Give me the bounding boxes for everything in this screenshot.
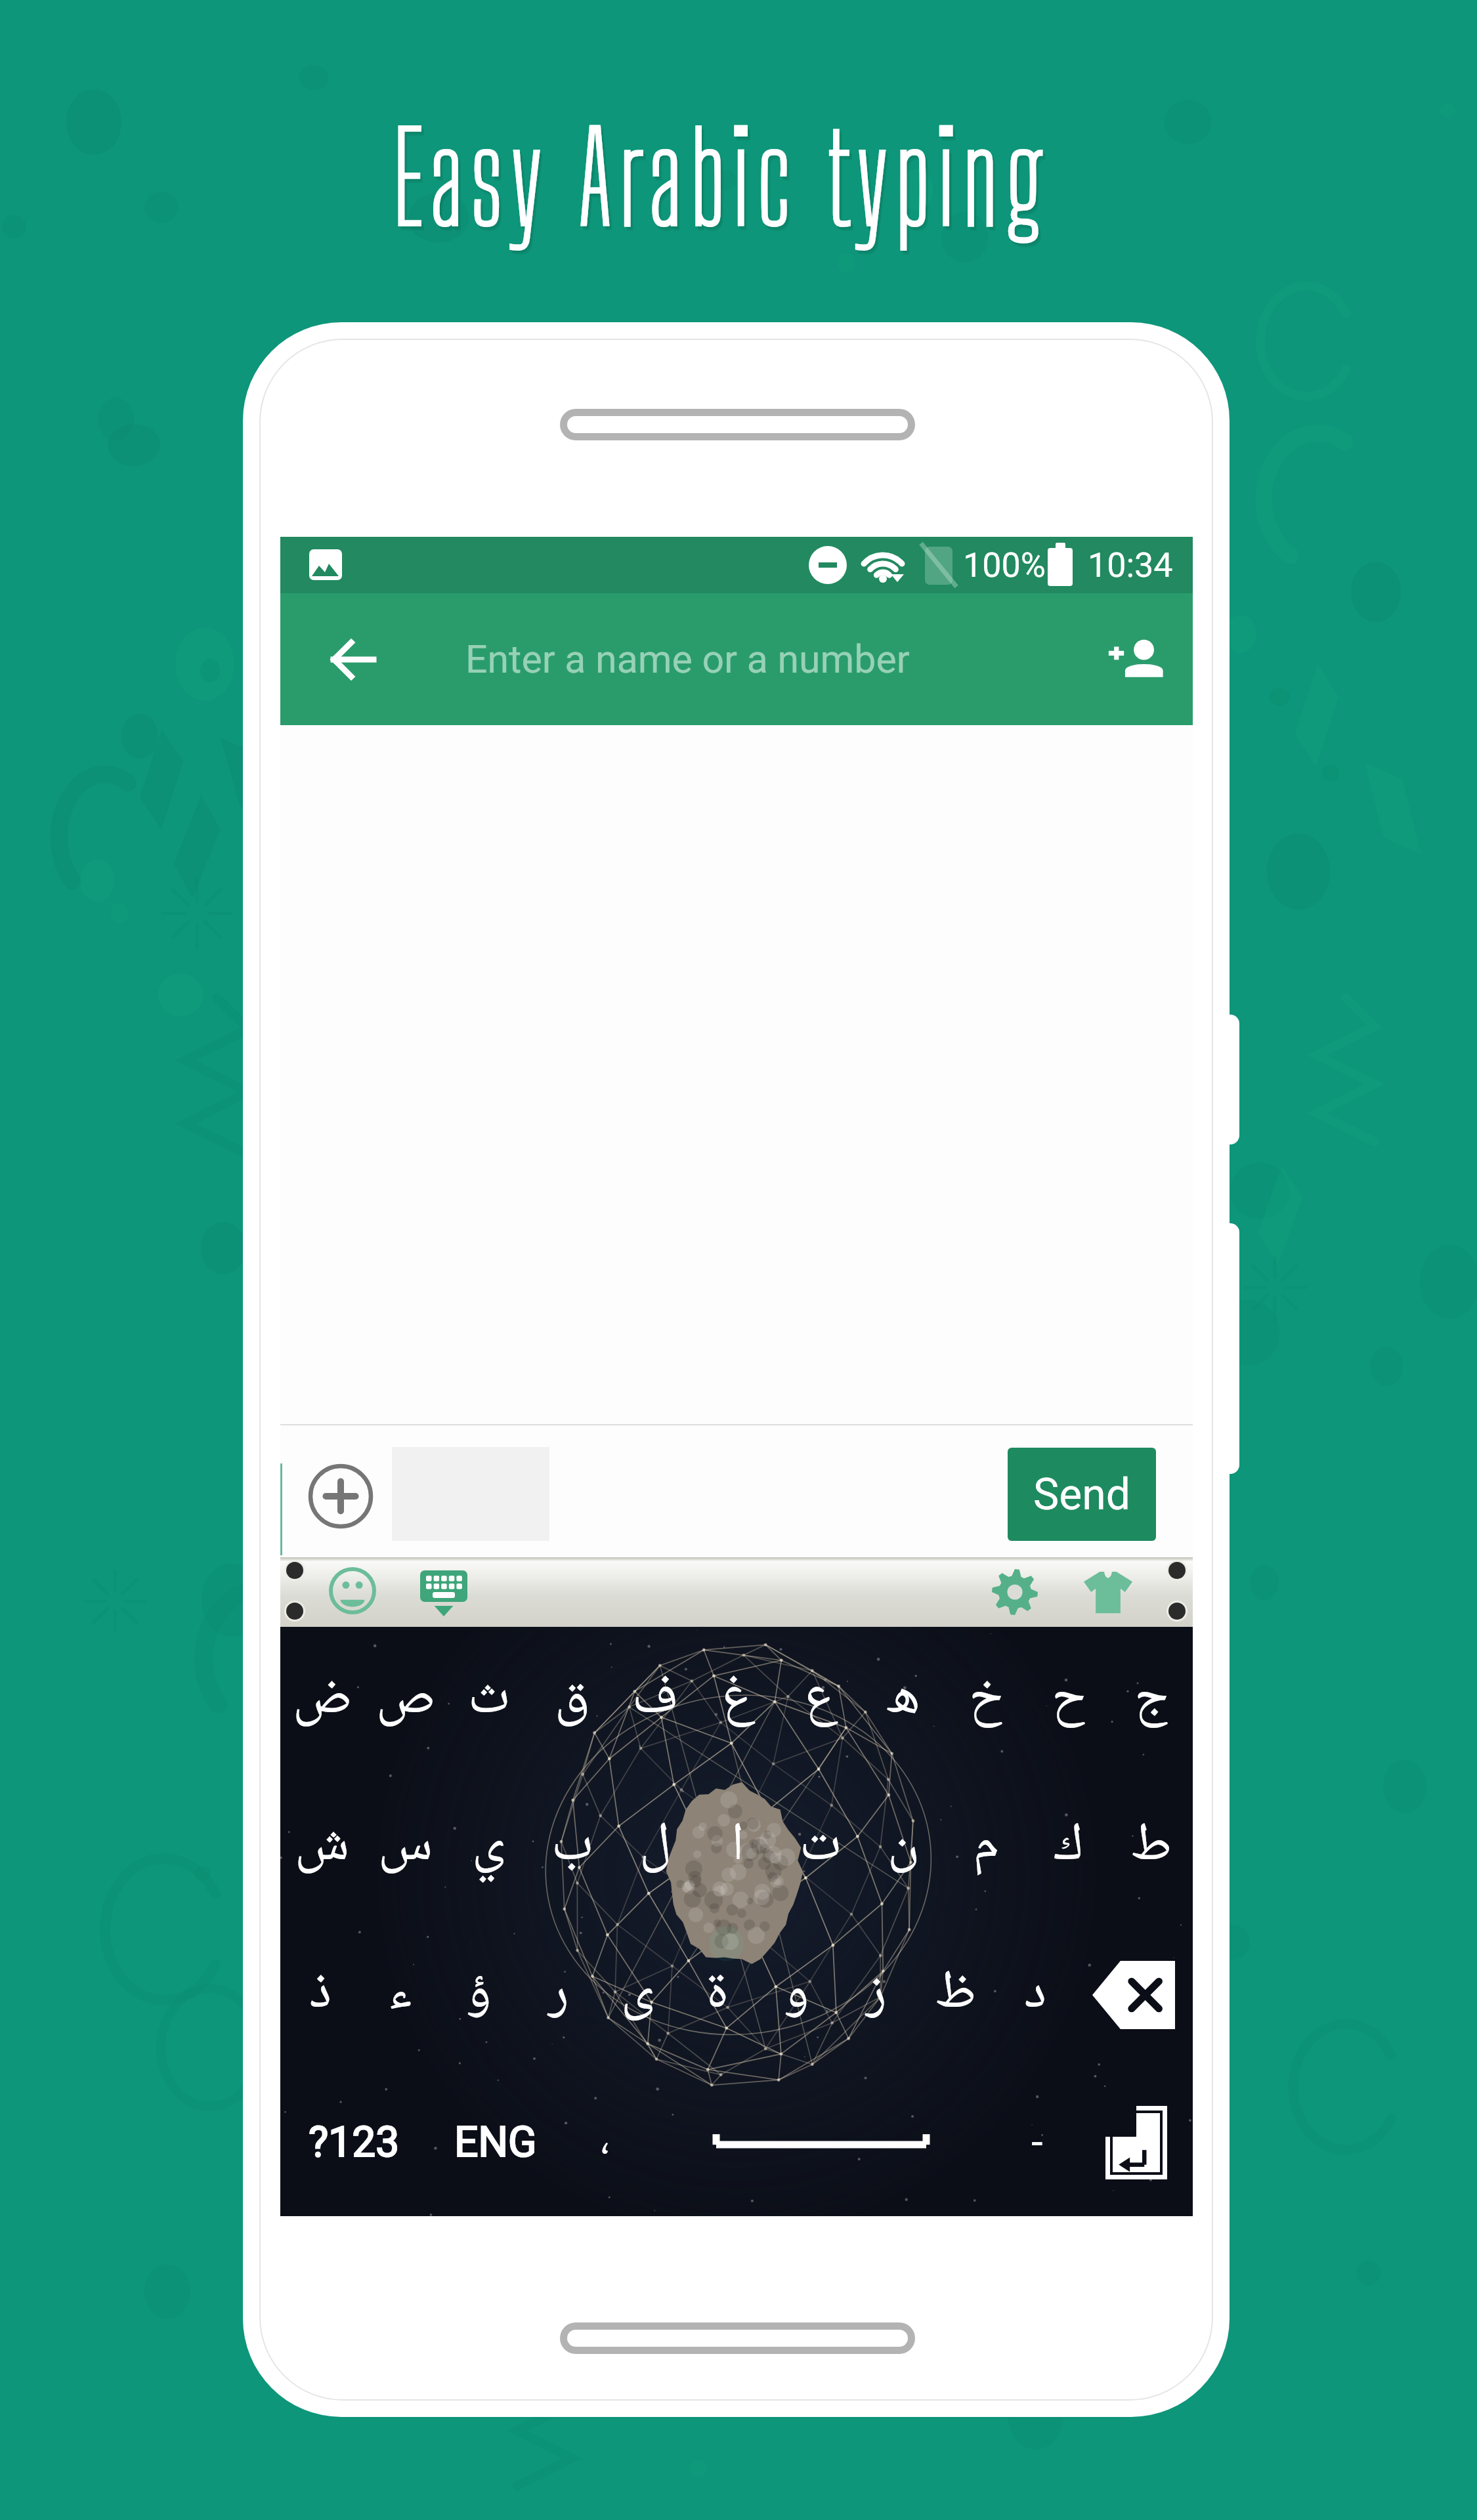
button[interactable]: ه	[862, 1627, 945, 1774]
staticText: ء	[388, 1949, 412, 2041]
staticText: ج	[1134, 1654, 1169, 1746]
button[interactable]: Backspace	[1075, 1921, 1193, 2068]
staticText: و	[784, 1949, 809, 2041]
staticText: 100%	[963, 545, 1046, 585]
staticText: ب	[551, 1801, 593, 1893]
staticText: ف	[632, 1654, 678, 1746]
button[interactable]: ق	[530, 1627, 614, 1774]
staticText: ض	[293, 1654, 352, 1746]
button[interactable]: س	[364, 1774, 447, 1921]
button[interactable]: Space	[648, 2068, 995, 2216]
button[interactable]: ج	[1110, 1627, 1193, 1774]
button[interactable]: ل	[614, 1774, 696, 1921]
button[interactable]: ص	[364, 1627, 447, 1774]
button[interactable]: ء	[360, 1921, 439, 2068]
staticText: ة	[706, 1949, 729, 2041]
staticText: Easy Arabic typing	[0, 107, 1461, 252]
staticText: م	[973, 1801, 1000, 1893]
staticText: ى	[621, 1949, 654, 2041]
button[interactable]: ف	[614, 1627, 696, 1774]
staticText: ENG	[454, 2118, 537, 2167]
staticText: ل	[639, 1801, 672, 1893]
staticText: ؤ	[466, 1949, 492, 2041]
button[interactable]: Emoji	[322, 1561, 383, 1621]
button[interactable]: Keyboard	[414, 1563, 474, 1622]
staticText: -	[1031, 2118, 1043, 2167]
staticText: ش	[295, 1801, 350, 1893]
staticText: ق	[555, 1654, 590, 1746]
button[interactable]: Back	[303, 593, 402, 725]
button[interactable]: ط	[1110, 1774, 1193, 1921]
staticText: ذ	[309, 1949, 332, 2041]
staticText: ر	[548, 1949, 569, 2041]
staticText: ?123	[309, 2118, 400, 2167]
button[interactable]: ح	[1027, 1627, 1110, 1774]
staticText: س	[378, 1801, 433, 1893]
staticText: ك	[1054, 1801, 1084, 1893]
staticText: ط	[1130, 1801, 1172, 1893]
staticText: ظ	[935, 1949, 977, 2041]
button[interactable]: Add contact	[1081, 593, 1193, 725]
staticText: غ	[721, 1654, 754, 1746]
staticText: ث	[468, 1654, 510, 1746]
button[interactable]: ؤ	[439, 1921, 519, 2068]
staticText: Enter a name or a number	[465, 637, 910, 682]
staticText: ه	[886, 1654, 920, 1746]
button[interactable]: -	[995, 2068, 1080, 2216]
button[interactable]: ب	[530, 1774, 614, 1921]
button[interactable]: ش	[280, 1774, 364, 1921]
button[interactable]: ENG	[428, 2068, 563, 2216]
button[interactable]: Send	[1008, 1448, 1156, 1541]
button[interactable]: Enter	[1080, 2068, 1193, 2216]
staticText: 10:34	[1088, 545, 1173, 585]
staticText: ن	[888, 1801, 920, 1893]
button[interactable]: ر	[519, 1921, 598, 2068]
button[interactable]: ث	[447, 1627, 530, 1774]
button[interactable]: ك	[1027, 1774, 1110, 1921]
button[interactable]: م	[945, 1774, 1027, 1921]
button[interactable]: ي	[447, 1774, 530, 1921]
staticText: Easy Arabic typing	[0, 105, 1460, 250]
button[interactable]: خ	[945, 1627, 1027, 1774]
staticText: ي	[472, 1801, 505, 1893]
staticText: ح	[1052, 1654, 1086, 1746]
button[interactable]: ا	[696, 1774, 779, 1921]
button[interactable]: ض	[280, 1627, 364, 1774]
button[interactable]: ع	[779, 1627, 862, 1774]
staticText: ع	[804, 1654, 837, 1746]
button[interactable]: Settings	[985, 1562, 1045, 1622]
button[interactable]: ?123	[280, 2068, 428, 2216]
button[interactable]: Theme	[1078, 1562, 1138, 1622]
button[interactable]: ز	[836, 1921, 916, 2068]
button[interactable]: Attach	[298, 1454, 383, 1539]
staticText: ص	[376, 1654, 435, 1746]
staticText: Send	[1033, 1469, 1130, 1520]
button[interactable]: ة	[677, 1921, 757, 2068]
button[interactable]: و	[757, 1921, 836, 2068]
staticText: ت	[800, 1801, 842, 1893]
button[interactable]: ظ	[916, 1921, 995, 2068]
staticText: ز	[866, 1949, 887, 2041]
staticText: خ	[969, 1654, 1004, 1746]
staticText: Easy Arabic typing	[0, 109, 1463, 254]
button[interactable]: ذ	[280, 1921, 360, 2068]
staticText: ا	[731, 1801, 744, 1893]
button[interactable]: ،	[563, 2068, 648, 2216]
button[interactable]: ت	[779, 1774, 862, 1921]
button[interactable]: د	[995, 1921, 1075, 2068]
button[interactable]: ن	[862, 1774, 945, 1921]
button[interactable]: غ	[696, 1627, 779, 1774]
staticText: د	[1024, 1949, 1046, 2041]
button[interactable]: ى	[598, 1921, 677, 2068]
staticText: ،	[601, 2107, 610, 2178]
